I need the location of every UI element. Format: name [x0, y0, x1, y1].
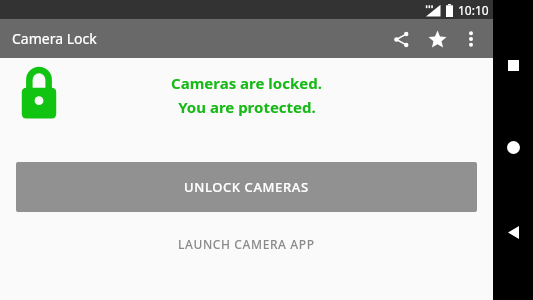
staticText: LAUNCH CAMERA APP	[178, 236, 315, 252]
button[interactable]: Favorite	[419, 21, 455, 57]
staticText: 10:10	[458, 2, 489, 18]
staticText: You are protected.	[178, 97, 316, 117]
button[interactable]: Back	[500, 219, 526, 245]
staticText: Camera Lock	[12, 29, 97, 48]
button[interactable]: More options	[455, 23, 487, 55]
staticText: Cameras are locked.	[171, 73, 322, 93]
button[interactable]: UNLOCK CAMERAS	[16, 162, 477, 212]
button[interactable]: LAUNCH CAMERA APP	[16, 226, 477, 262]
button[interactable]: Home	[500, 134, 526, 160]
staticText: UNLOCK CAMERAS	[184, 178, 309, 196]
button[interactable]: Recent apps	[500, 52, 526, 78]
button[interactable]: Share	[383, 21, 419, 57]
